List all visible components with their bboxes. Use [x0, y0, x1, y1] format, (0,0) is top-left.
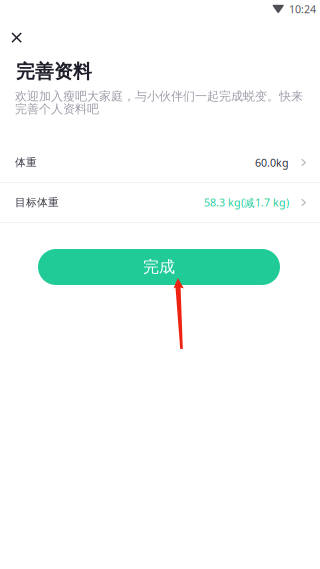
- staticText: 完成: [143, 257, 175, 277]
- staticText: 完善资料: [16, 60, 92, 83]
- staticText: 58.3 kg(减1.7 kg): [204, 195, 289, 210]
- button[interactable]: 目标体重: [0, 183, 320, 222]
- staticText: 10:24: [289, 2, 316, 16]
- button[interactable]: 完成: [38, 249, 280, 285]
- staticText: 目标体重: [15, 196, 59, 209]
- staticText: 60.0kg: [255, 155, 289, 170]
- button[interactable]: 体重: [0, 143, 320, 182]
- staticText: 体重: [15, 156, 37, 169]
- button[interactable]: Close: [2, 23, 31, 52]
- staticText: 欢迎加入瘦吧大家庭，与小伙伴们一起完成蜕变。快来完善个人资料吧: [15, 89, 303, 116]
